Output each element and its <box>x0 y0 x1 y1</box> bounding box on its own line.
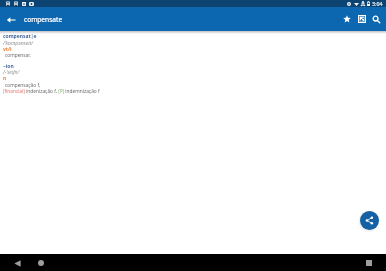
button[interactable]: Home <box>34 256 48 270</box>
button[interactable]: Back <box>10 256 24 270</box>
button[interactable]: Search <box>369 7 384 31</box>
staticText: compensar. <box>5 52 31 59</box>
staticText: /-ˈseɪʃn/ <box>3 69 20 76</box>
staticText: n <box>3 75 7 82</box>
button[interactable]: Add to favourites <box>339 7 354 31</box>
staticText: 3:04 <box>372 0 383 7</box>
staticText: /ˈkɒmpənseɪt/ <box>3 40 34 47</box>
button[interactable]: Share <box>360 211 379 230</box>
staticText: (financial) indenização f, (P) indemniza… <box>3 88 100 95</box>
button[interactable]: Navigate up <box>0 9 21 30</box>
staticText: compensação f, <box>5 82 41 89</box>
staticText: vt/i <box>3 46 12 53</box>
staticText: compensate <box>24 15 63 24</box>
staticText: compensat|e <box>3 33 37 40</box>
button[interactable]: Picture <box>354 7 369 31</box>
staticText: ~ion <box>3 63 14 70</box>
button[interactable]: Recent apps <box>362 256 376 270</box>
